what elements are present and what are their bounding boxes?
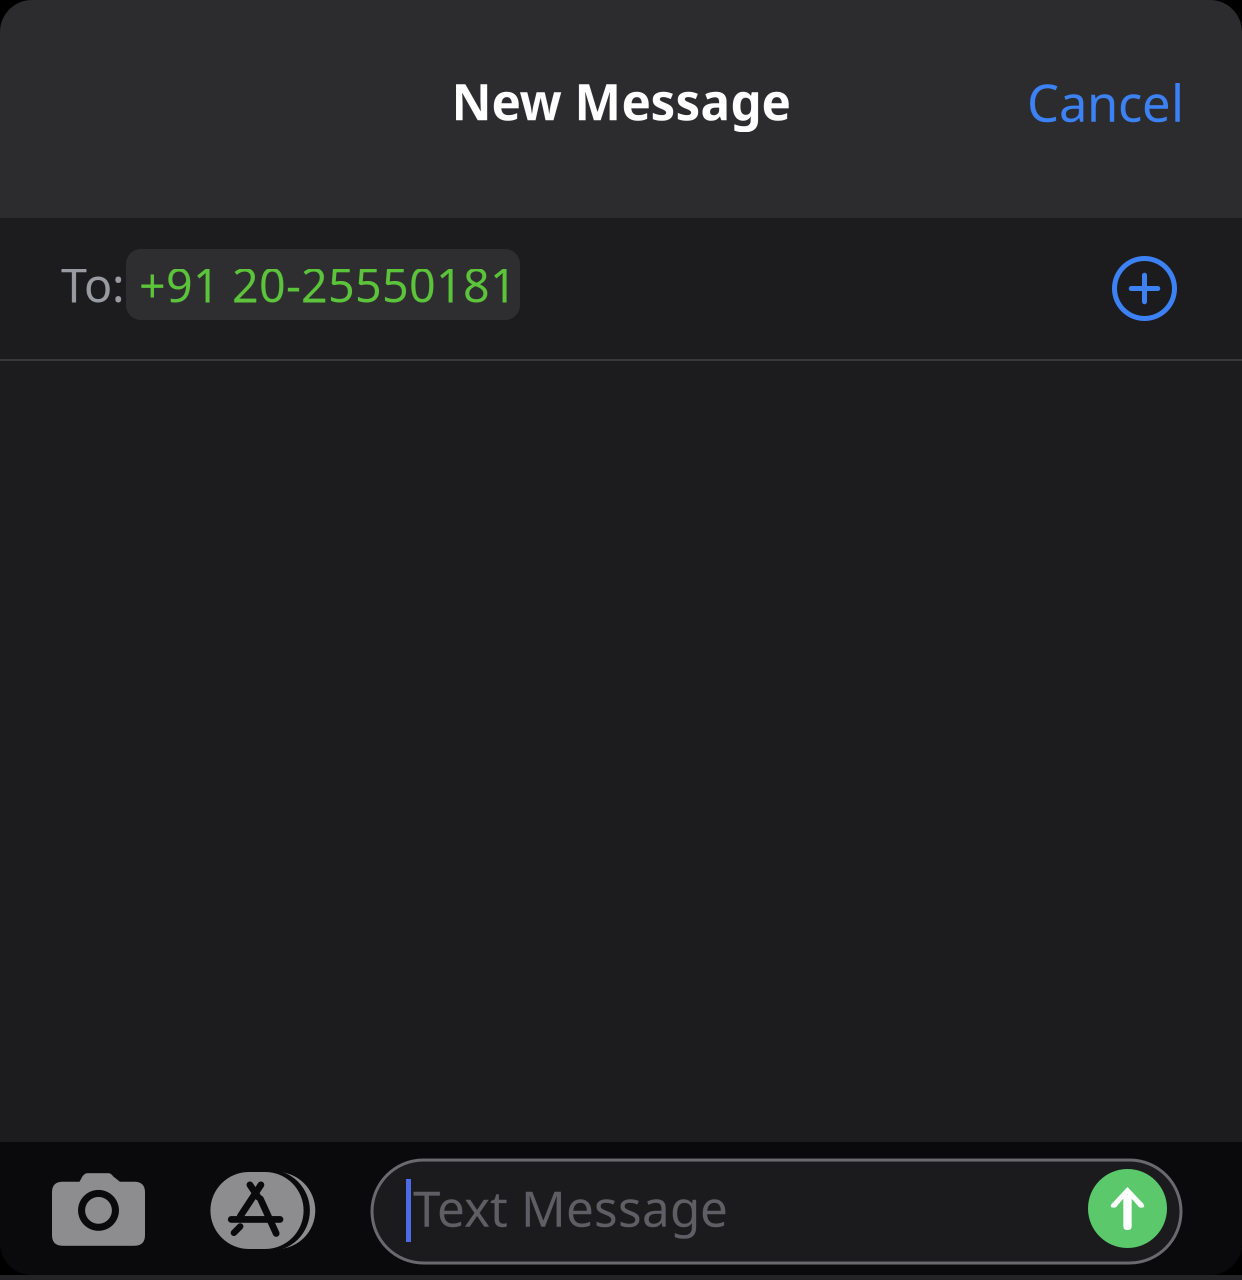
button[interactable]: Send	[1088, 1172, 1167, 1251]
button[interactable]: Camera	[52, 1149, 145, 1267]
staticText: New Message	[451, 68, 790, 134]
staticText: To:	[61, 253, 125, 315]
button[interactable]: +91 20-25550181	[126, 249, 520, 320]
button[interactable]: Apps	[205, 1149, 309, 1267]
staticText: +91 20-25550181	[139, 253, 517, 315]
staticText: Text Message	[413, 1175, 728, 1240]
button[interactable]: Cancel	[1015, 46, 1196, 158]
button[interactable]: Add contact	[1100, 240, 1189, 329]
staticText: Cancel	[1027, 68, 1184, 136]
